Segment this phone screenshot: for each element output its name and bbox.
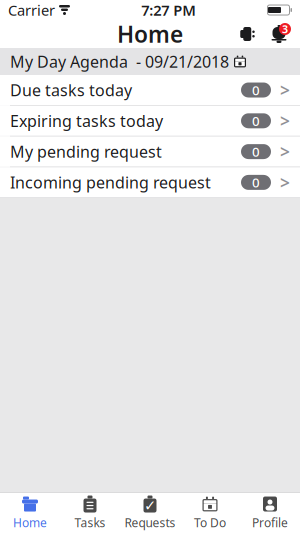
- button[interactable]: Profile: [240, 493, 300, 533]
- staticText: 0: [252, 143, 260, 160]
- staticText: ✓: [144, 497, 156, 514]
- staticText: Incoming pending request: [10, 172, 211, 193]
- staticText: >: [280, 78, 290, 101]
- staticText: Home: [117, 19, 183, 49]
- staticText: My pending request: [10, 141, 162, 162]
- button[interactable]: Announcements: [228, 19, 262, 49]
- button[interactable]: Tasks: [60, 493, 120, 533]
- staticText: Carrier: [8, 0, 55, 20]
- button[interactable]: Home: [0, 493, 60, 533]
- staticText: Requests: [124, 514, 175, 530]
- staticText: Expiring tasks today: [10, 110, 163, 131]
- button[interactable]: Incoming pending request: [0, 167, 300, 197]
- staticText: 0: [252, 173, 260, 191]
- staticText: >: [280, 109, 290, 132]
- button[interactable]: Due tasks today: [0, 75, 300, 105]
- staticText: 3: [282, 22, 288, 36]
- staticText: Tasks: [74, 514, 105, 530]
- staticText: >: [280, 171, 290, 194]
- staticText: 7:27 PM: [141, 0, 196, 20]
- button[interactable]: Notifications, 3 unread: [262, 19, 296, 49]
- staticText: Due tasks today: [10, 79, 132, 101]
- staticText: >: [280, 140, 290, 163]
- staticText: 0: [252, 81, 260, 99]
- staticText: To Do: [194, 514, 226, 530]
- button[interactable]: Expiring tasks today: [0, 106, 300, 136]
- button[interactable]: To Do: [180, 493, 240, 533]
- staticText: Home: [13, 514, 47, 530]
- staticText: 0: [252, 112, 260, 130]
- button[interactable]: My pending request: [0, 137, 300, 167]
- staticText: My Day Agenda - 09/21/2018: [10, 51, 229, 72]
- staticText: Profile: [252, 514, 288, 530]
- button[interactable]: ✓: [120, 493, 180, 533]
